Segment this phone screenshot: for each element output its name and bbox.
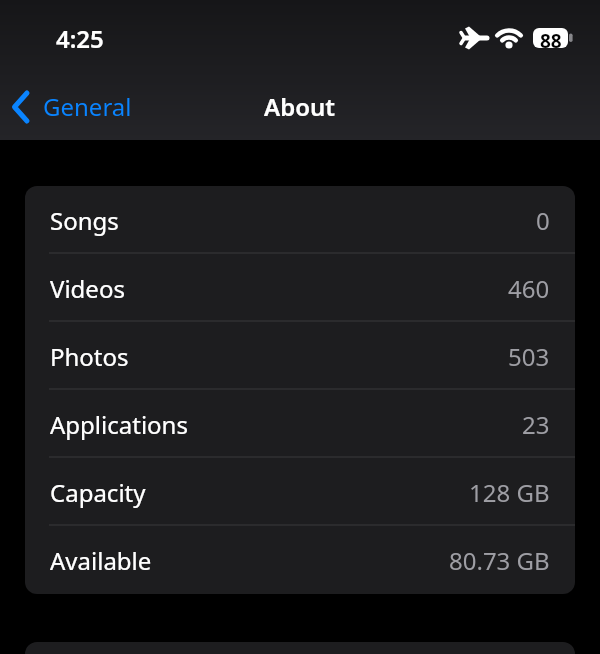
button[interactable]: Videos — [25, 254, 575, 322]
staticText: Photos — [50, 340, 129, 373]
staticText: 0 — [536, 204, 550, 237]
staticText: General — [43, 90, 132, 123]
staticText: Applications — [50, 408, 188, 441]
staticText: Videos — [50, 272, 125, 305]
button[interactable]: Available — [25, 526, 575, 594]
staticText: 460 — [508, 272, 550, 305]
staticText: 80.73 GB — [449, 544, 550, 577]
staticText: 88 — [540, 28, 562, 48]
staticText: Available — [50, 544, 152, 577]
button[interactable]: General — [6, 88, 146, 124]
button[interactable]: Songs — [25, 186, 575, 254]
button[interactable]: Capacity — [25, 458, 575, 526]
staticText: About — [264, 90, 336, 123]
button[interactable]: Photos — [25, 322, 575, 390]
staticText: 23 — [522, 408, 550, 441]
staticText: Capacity — [50, 476, 146, 509]
staticText: 4:25 — [56, 22, 104, 55]
staticText: 128 GB — [469, 476, 550, 509]
button[interactable]: Applications — [25, 390, 575, 458]
staticText: Songs — [50, 204, 119, 237]
staticText: 503 — [508, 340, 550, 373]
